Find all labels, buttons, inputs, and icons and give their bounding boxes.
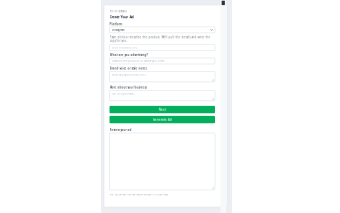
button[interactable]: Next xyxy=(109,106,215,113)
staticText: Brand voice or style notes xyxy=(109,67,146,70)
staticText: Paste a link or describe the product. We… xyxy=(109,35,210,43)
staticText: More about your business xyxy=(109,85,146,89)
button[interactable]: Generate Ad xyxy=(109,116,215,123)
button[interactable]: Tell us a promise... xyxy=(109,90,215,101)
staticText: What are you advertising? xyxy=(109,53,147,57)
button[interactable]: Instagram xyxy=(109,27,215,33)
button[interactable]: Enter any additional info... xyxy=(109,71,215,82)
staticText: Create Your Ad xyxy=(109,15,133,19)
staticText: Instagram xyxy=(112,28,124,32)
button[interactable]: Describe the product or service you offe… xyxy=(109,58,215,64)
staticText: Enter any additional info... xyxy=(112,73,148,76)
staticText: Generate Ad xyxy=(153,118,172,122)
staticText: Tip: You can edit the text before you po… xyxy=(109,193,168,196)
staticText: Enter a reference URL xyxy=(112,46,137,49)
button[interactable]: Enter a reference URL xyxy=(109,45,215,51)
staticText: Fill in details xyxy=(109,10,126,13)
staticText: Tell us a promise... xyxy=(112,92,136,95)
staticText: Review your ad xyxy=(109,128,131,132)
staticText: Next xyxy=(159,108,166,112)
staticText: Platform xyxy=(109,22,122,26)
staticText: Describe the product or service you offe… xyxy=(112,59,164,63)
